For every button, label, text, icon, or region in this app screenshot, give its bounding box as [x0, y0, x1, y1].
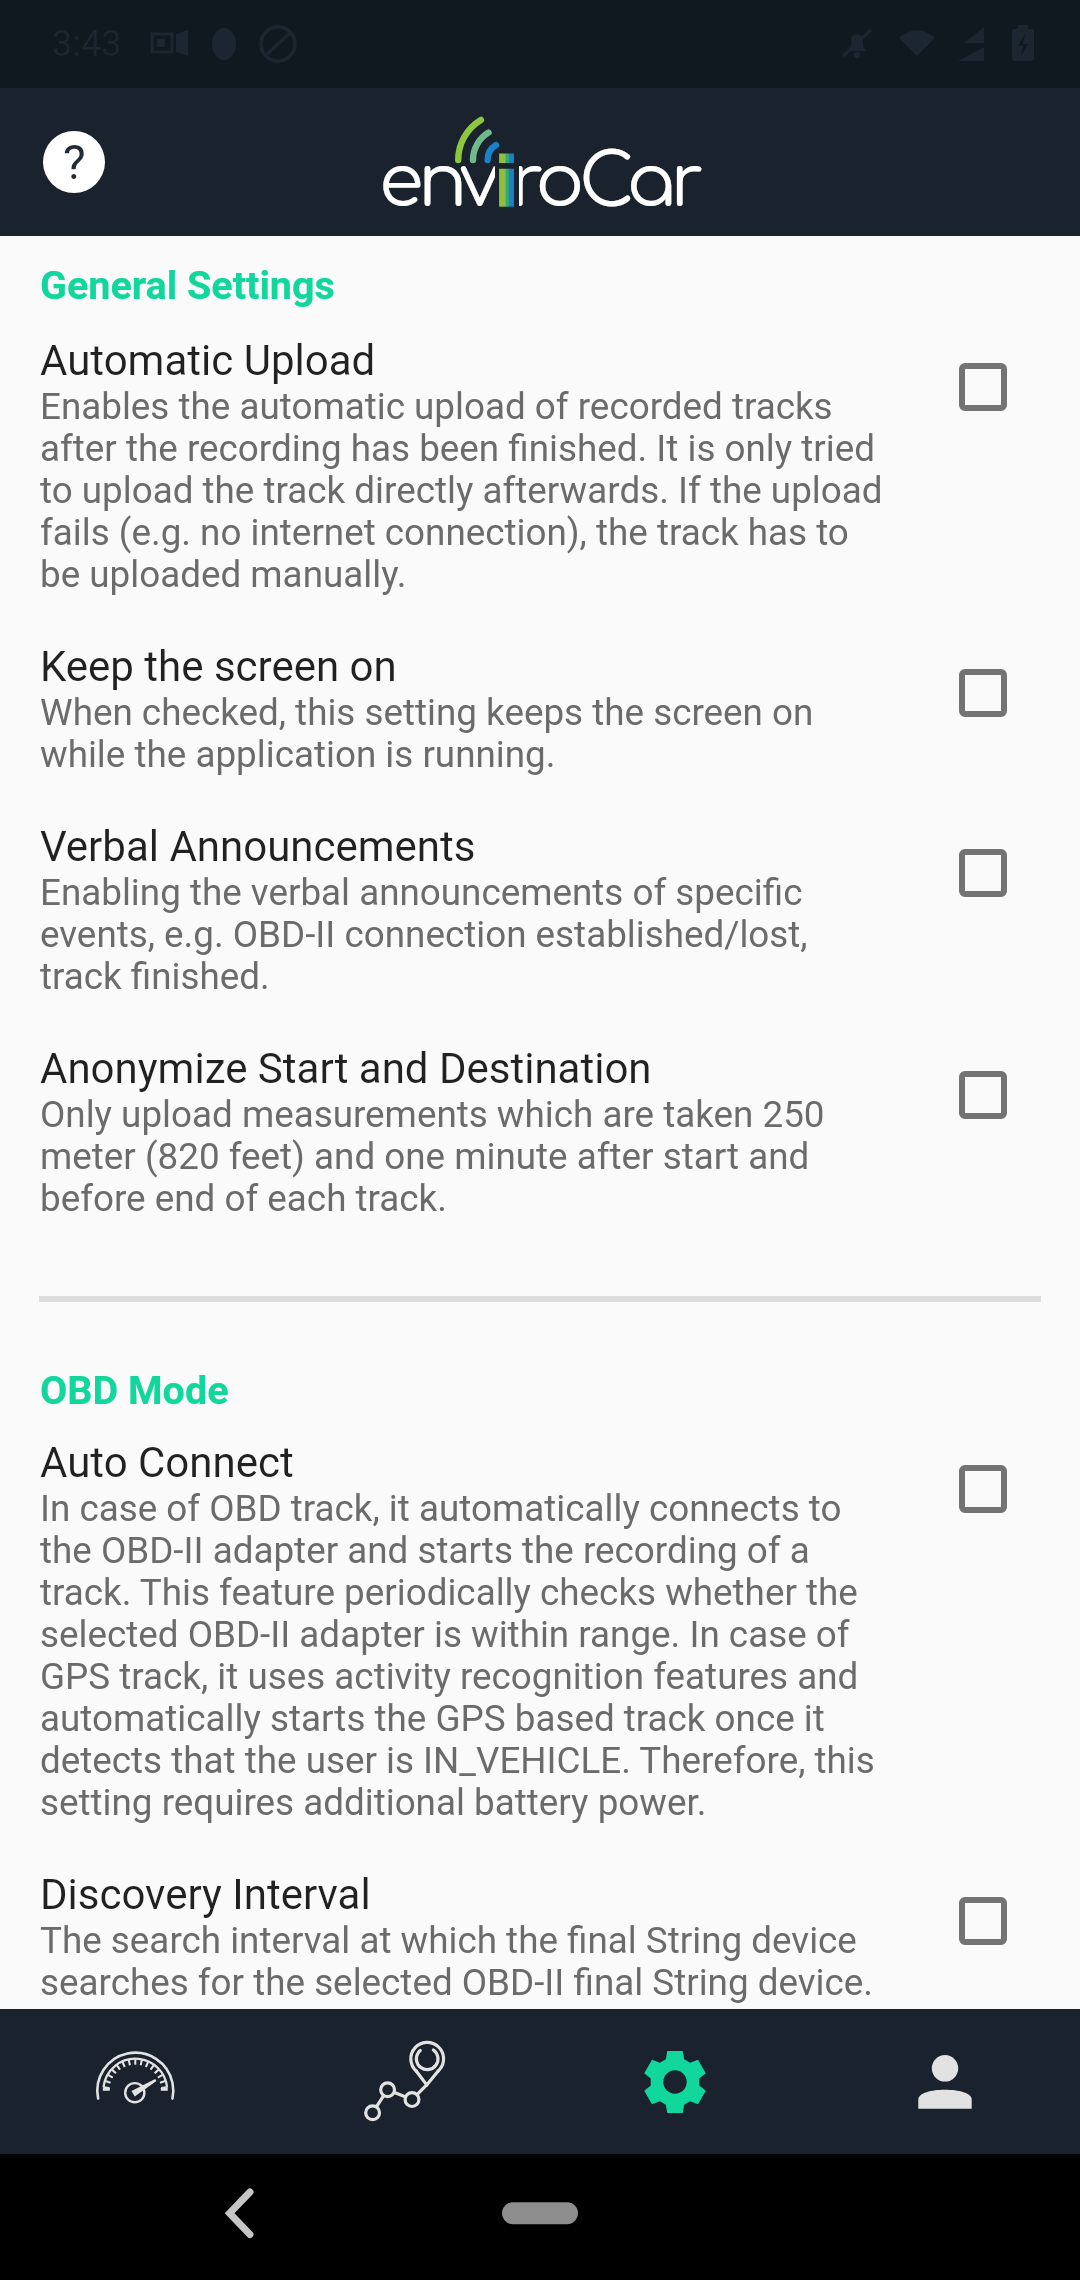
button[interactable]: Help [26, 114, 122, 210]
staticText: The search interval at which the final S… [40, 1919, 885, 2004]
staticText: OBD Mode [40, 1367, 229, 1413]
staticText: Anonymize Start and Destination [40, 1044, 652, 1093]
staticText: Discovery Interval [40, 1870, 371, 1919]
staticText: 3:43 [52, 23, 122, 65]
button[interactable]: Keep the screen on [0, 619, 1080, 799]
staticText: Only upload measurements which are taken… [40, 1093, 885, 1220]
staticText: Verbal Announcements [40, 822, 476, 871]
staticText: Automatic Upload [40, 336, 376, 385]
button[interactable]: Verbal Announcements [0, 799, 1080, 1021]
staticText: When checked, this setting keeps the scr… [40, 691, 885, 776]
button[interactable]: Tracks [270, 2009, 540, 2154]
button[interactable]: Auto Connect [0, 1415, 1080, 1847]
button[interactable]: Automatic Upload [0, 313, 1080, 619]
staticText: Enabling the verbal announcements of spe… [40, 871, 885, 998]
button[interactable]: Anonymize Start and Destination [0, 1021, 1080, 1243]
button[interactable]: Dashboard [0, 2009, 270, 2154]
button[interactable]: Profile [810, 2009, 1080, 2154]
button[interactable]: Settings [540, 2009, 810, 2154]
staticText: In case of OBD track, it automatically c… [40, 1487, 885, 1824]
button[interactable]: Discovery Interval [0, 1847, 1080, 2009]
staticText: General Settings [40, 262, 335, 308]
staticText: ? [63, 134, 86, 190]
staticText: enviroCar [379, 143, 699, 223]
staticText: Keep the screen on [40, 642, 397, 691]
staticText: Auto Connect [40, 1438, 294, 1487]
staticText: Enables the automatic upload of recorded… [40, 385, 885, 596]
